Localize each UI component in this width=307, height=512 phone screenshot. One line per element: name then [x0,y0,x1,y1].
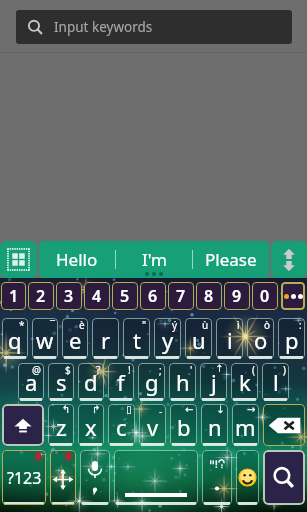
staticText: 5 [120,285,130,307]
button[interactable]: Shift [2,404,44,446]
staticText: h [176,367,190,397]
staticText: I'm [142,248,167,271]
button[interactable]: z [46,404,76,446]
button[interactable]: 1 [1,282,26,310]
staticText: 3 [64,285,74,307]
staticText: a [25,367,38,397]
staticText: → [247,404,256,416]
staticText: Input keywords [54,18,153,36]
button[interactable]: 3 [56,282,82,310]
staticText: i [227,325,233,355]
button[interactable]: Expand suggestions [271,241,307,278]
button[interactable]: v [137,404,168,446]
button[interactable]: Arrow keys [48,450,78,505]
staticText: q [8,325,22,355]
button[interactable]: p [276,318,307,359]
staticText: - [159,404,163,418]
staticText: $ [65,363,71,377]
button[interactable]: Space [112,450,200,505]
button[interactable]: g [136,363,167,401]
button[interactable]: Emoji [234,450,261,505]
staticText: : [299,318,302,332]
button[interactable]: 4 [84,282,110,310]
staticText: w [36,325,54,355]
staticText: m [235,412,256,442]
staticText: o [254,325,268,355]
button[interactable]: u [183,318,214,359]
button[interactable]: Search [263,450,305,505]
button[interactable]: d [76,363,106,401]
button[interactable]: Input keywords [16,10,292,44]
button[interactable]: I'm [116,241,192,278]
button[interactable]: s [46,363,76,401]
button[interactable]: 7 [168,282,194,310]
button[interactable]: k [229,363,260,401]
staticText: g [145,367,159,397]
button[interactable]: l [260,363,291,401]
button[interactable]: Comma and voice input [78,450,112,505]
staticText: d [84,367,98,397]
button[interactable]: n [199,404,230,446]
staticText: ' [190,363,193,377]
staticText: ↑ [215,363,224,375]
staticText: ← [185,404,194,416]
button[interactable]: e [60,318,90,359]
staticText: è [79,318,85,332]
staticText: ù [202,318,209,332]
staticText: ?123 [7,467,42,489]
staticText: 8 [204,285,214,307]
staticText: ↱ [92,404,101,416]
button[interactable]: Backspace [263,404,305,446]
button[interactable]: x [76,404,106,446]
button[interactable]: j [198,363,229,401]
button[interactable]: 6 [140,282,166,310]
staticText: l [273,367,279,397]
button[interactable]: t [121,318,152,359]
button[interactable]: o [245,318,276,359]
button[interactable]: c [106,404,137,446]
staticText: f [117,367,125,397]
staticText: s [56,367,67,397]
staticText: ) [283,363,286,377]
staticText: Please [205,248,257,271]
staticText: 4 [92,285,102,307]
button[interactable]: Keyboard themes [0,241,37,278]
staticText: u [192,325,206,355]
staticText: @ [32,363,41,377]
button[interactable]: r [90,318,121,359]
staticText: " [142,318,147,332]
button[interactable]: f [106,363,136,401]
button[interactable]: Period [200,450,234,505]
staticText: b [177,412,191,442]
button[interactable]: i [214,318,245,359]
button[interactable]: Hello [39,241,115,278]
button[interactable]: Please [193,241,269,278]
button[interactable]: 5 [112,282,138,310]
button[interactable]: a [16,363,46,401]
button[interactable]: q [0,318,30,359]
staticText: j [211,367,217,397]
staticText: y [162,325,174,355]
staticText: r [101,325,111,355]
button[interactable]: 8 [196,282,222,310]
staticText: 1 [9,285,19,307]
staticText: ¯ [50,318,55,332]
staticText: p [285,325,299,355]
staticText: z [56,412,67,442]
button[interactable]: 0 [252,282,278,310]
staticText: ? [96,363,101,377]
button[interactable]: b [168,404,199,446]
button[interactable]: 2 [28,282,54,310]
button[interactable]: 9 [224,282,250,310]
button[interactable]: m [230,404,261,446]
button[interactable]: More symbols [281,282,305,310]
staticText: t [133,325,141,355]
button[interactable]: y [152,318,183,359]
staticText: 2 [36,285,46,307]
staticText: ▯ [126,404,132,416]
staticText: ò [264,318,271,332]
button[interactable]: ?123 [0,450,48,505]
button[interactable]: w [30,318,60,359]
staticText: c [116,412,127,442]
button[interactable]: h [167,363,198,401]
